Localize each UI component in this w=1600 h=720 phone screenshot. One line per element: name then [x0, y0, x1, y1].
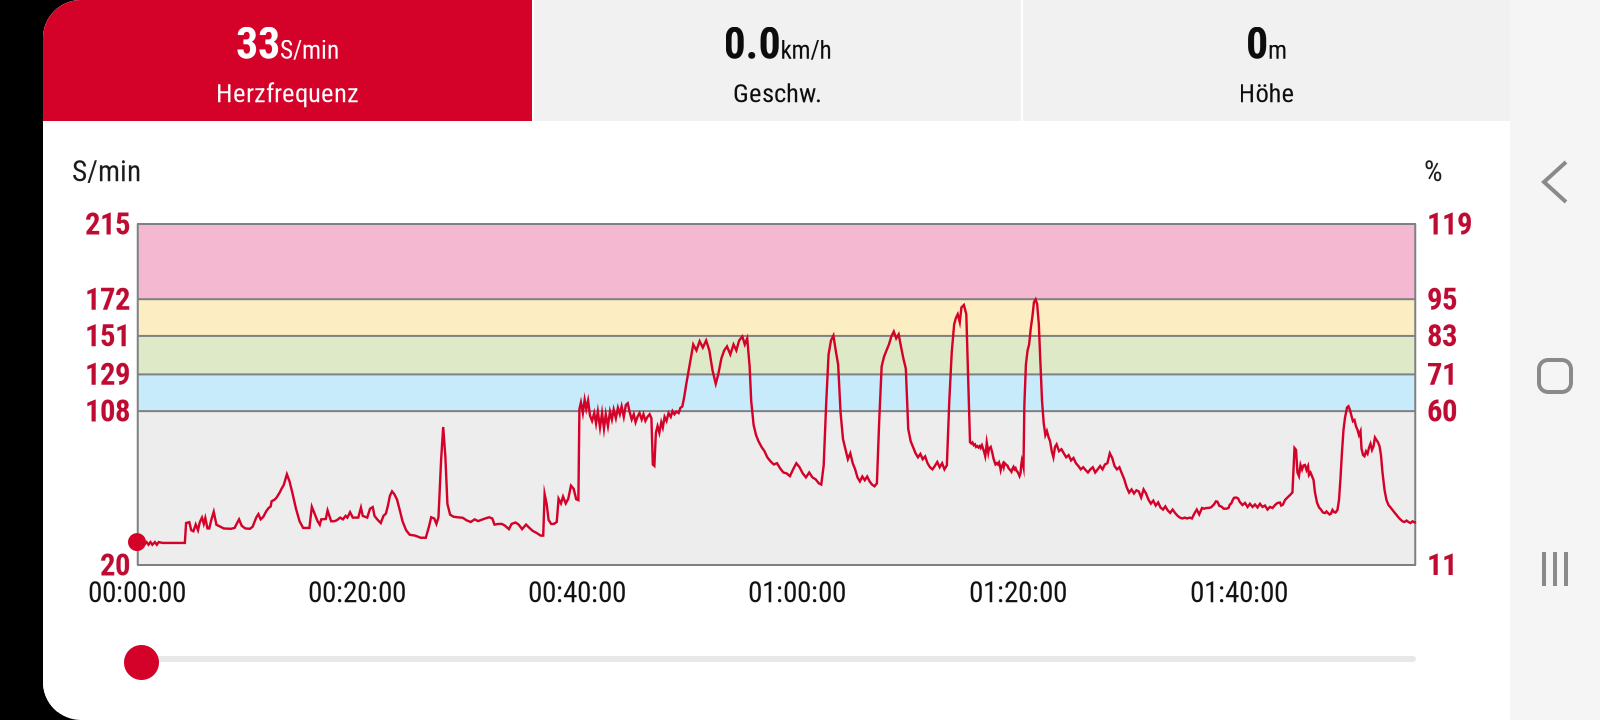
- staticText: 00:00:00: [88, 575, 186, 609]
- staticText: 33: [236, 18, 280, 70]
- button[interactable]: 33: [43, 0, 532, 121]
- staticText: 00:20:00: [308, 575, 406, 609]
- staticText: 108: [85, 393, 130, 429]
- staticText: 71: [1427, 356, 1457, 392]
- staticText: 95: [1427, 281, 1457, 317]
- staticText: Geschw.: [733, 78, 822, 109]
- button[interactable]: Timeline scrubber: [43, 612, 1510, 712]
- staticText: 119: [1427, 206, 1472, 242]
- staticText: S/min: [280, 35, 339, 65]
- staticText: 151: [85, 318, 130, 354]
- button[interactable]: Recent apps: [1520, 528, 1590, 610]
- button[interactable]: 0: [1023, 0, 1510, 121]
- button[interactable]: Back: [1522, 140, 1588, 224]
- staticText: km/h: [780, 35, 831, 65]
- staticText: 01:40:00: [1190, 575, 1288, 609]
- button[interactable]: 0.0: [534, 0, 1021, 121]
- staticText: 01:00:00: [748, 575, 846, 609]
- staticText: 129: [85, 356, 130, 392]
- staticText: Höhe: [1238, 78, 1294, 109]
- staticText: Herzfrequenz: [216, 78, 359, 109]
- staticText: %: [1424, 154, 1443, 188]
- staticText: 0: [1246, 18, 1268, 70]
- staticText: 11: [1427, 547, 1457, 583]
- staticText: 83: [1427, 318, 1457, 354]
- button[interactable]: Home: [1515, 336, 1595, 416]
- staticText: 00:40:00: [528, 575, 626, 609]
- staticText: 215: [85, 206, 130, 242]
- staticText: 20: [100, 547, 130, 583]
- staticText: 0.0: [723, 18, 780, 70]
- staticText: m: [1268, 35, 1287, 65]
- staticText: 172: [85, 281, 130, 317]
- staticText: 60: [1427, 393, 1457, 429]
- staticText: S/min: [72, 154, 141, 188]
- staticText: 01:20:00: [969, 575, 1067, 609]
